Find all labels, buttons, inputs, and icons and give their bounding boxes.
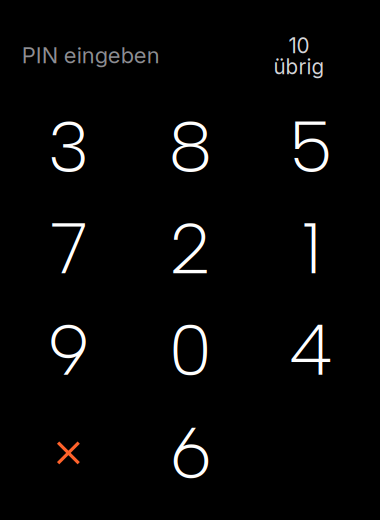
button[interactable]: 2 — [130, 198, 252, 299]
staticText: 7 — [49, 206, 88, 291]
button[interactable]: 6 — [130, 402, 252, 504]
button[interactable]: 0 — [130, 299, 252, 401]
button[interactable]: 5 — [250, 96, 372, 198]
staticText: 5 — [289, 104, 333, 189]
staticText: 6 — [170, 410, 212, 495]
staticText: 3 — [47, 104, 89, 189]
button[interactable]: 3 — [7, 96, 129, 198]
button[interactable]: 4 — [250, 299, 372, 401]
staticText: 4 — [288, 308, 334, 392]
staticText: übrig — [273, 54, 324, 79]
staticText: 0 — [169, 308, 213, 392]
button[interactable]: 9 — [7, 299, 129, 401]
staticText: PIN eingeben — [22, 42, 160, 69]
staticText: 10 — [288, 33, 309, 58]
staticText: 9 — [47, 308, 89, 392]
staticText: 1 — [301, 206, 321, 291]
button[interactable]: Löschen — [7, 402, 129, 504]
button[interactable]: 1 — [250, 198, 372, 299]
button[interactable]: 7 — [7, 198, 129, 299]
staticText: 2 — [169, 206, 212, 291]
button[interactable]: 8 — [130, 96, 252, 198]
staticText: 8 — [168, 104, 213, 189]
